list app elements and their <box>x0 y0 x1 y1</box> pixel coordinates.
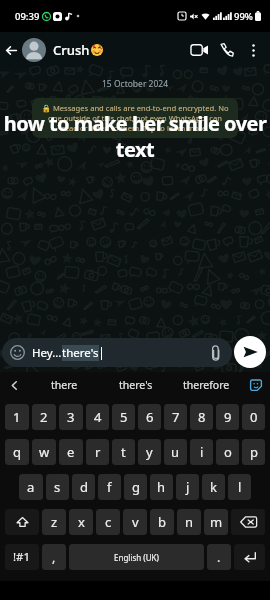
button[interactable]: Video call <box>185 36 213 64</box>
staticText: v <box>132 513 139 531</box>
staticText: m <box>210 513 223 531</box>
button[interactable]: t <box>112 439 135 465</box>
button[interactable]: Key <box>231 509 265 535</box>
staticText: r <box>95 443 101 461</box>
staticText: j <box>186 478 190 496</box>
staticText: t <box>121 443 126 461</box>
staticText: Crush <box>53 41 90 59</box>
button[interactable]: a <box>19 474 43 500</box>
staticText: p <box>250 443 258 461</box>
button[interactable]: r <box>86 439 109 465</box>
staticText: !#1 <box>13 549 31 565</box>
button[interactable]: p <box>242 439 265 465</box>
staticText: 8 <box>198 408 206 426</box>
button[interactable]: English (UK) <box>69 544 204 570</box>
button[interactable]: Stickers <box>242 372 270 398</box>
staticText: h <box>157 478 166 496</box>
button[interactable]: y <box>138 439 161 465</box>
button[interactable]: Attach <box>208 345 224 361</box>
button[interactable]: u <box>164 439 187 465</box>
staticText: 15 October 2024 <box>102 78 169 90</box>
button[interactable]: v <box>123 509 147 535</box>
staticText: g <box>132 478 140 496</box>
button[interactable]: w <box>32 439 56 465</box>
button[interactable]: 7 <box>164 404 187 430</box>
button[interactable]: Hey... <box>2 338 232 367</box>
staticText: 2 <box>40 408 48 426</box>
button[interactable]: f <box>98 474 121 500</box>
staticText: 99% <box>234 10 253 23</box>
button[interactable]: 0 <box>242 404 265 430</box>
button[interactable]: Send <box>234 336 266 368</box>
staticText: y <box>146 443 153 461</box>
staticText: 1 <box>13 408 21 426</box>
staticText: there <box>51 378 78 392</box>
button[interactable]: n <box>177 509 201 535</box>
staticText: 09:39 <box>15 10 40 23</box>
button[interactable]: z <box>42 509 66 535</box>
button[interactable]: 3 <box>59 404 83 430</box>
button[interactable]: !#1 <box>5 544 39 570</box>
staticText: 4 <box>94 408 102 426</box>
button[interactable]: . <box>207 544 231 570</box>
button[interactable]: Call <box>213 36 241 64</box>
staticText: z <box>51 513 58 531</box>
button[interactable]: Key <box>5 509 39 535</box>
button[interactable]: , <box>42 544 66 570</box>
button[interactable]: Previous suggestions <box>0 372 28 398</box>
button[interactable]: 2 <box>32 404 56 430</box>
button[interactable]: 8 <box>190 404 213 430</box>
button[interactable]: there's <box>100 372 171 398</box>
button[interactable]: c <box>96 509 120 535</box>
button[interactable]: 5 <box>112 404 135 430</box>
staticText: 9 <box>224 408 232 426</box>
staticText: there's <box>119 378 153 392</box>
staticText: k <box>210 478 217 496</box>
button[interactable]: b <box>150 509 174 535</box>
staticText: i <box>200 443 204 461</box>
staticText: b <box>158 513 166 531</box>
staticText: o <box>224 443 232 461</box>
button[interactable]: i <box>190 439 213 465</box>
staticText: 7 <box>172 408 180 426</box>
staticText: 6 <box>146 408 154 426</box>
staticText: w <box>39 443 50 461</box>
button[interactable]: 6 <box>138 404 161 430</box>
button[interactable]: x <box>69 509 93 535</box>
staticText: q <box>13 443 21 461</box>
button[interactable]: Crush <box>53 41 185 59</box>
button[interactable]: there <box>28 372 100 398</box>
button[interactable]: g <box>124 474 147 500</box>
button[interactable]: h <box>150 474 173 500</box>
button[interactable]: q <box>5 439 29 465</box>
staticText: 🔒 Messages and calls are end-to-end encr… <box>40 103 230 133</box>
staticText: 0 <box>250 408 258 426</box>
button[interactable]: m <box>204 509 228 535</box>
staticText: c <box>105 513 112 531</box>
button[interactable]: Key <box>234 544 265 570</box>
button[interactable]: More options <box>241 38 265 62</box>
staticText: , <box>52 549 56 566</box>
staticText: there's <box>62 345 99 361</box>
staticText: English (UK) <box>114 552 159 563</box>
staticText: therefore <box>183 378 230 392</box>
button[interactable]: 4 <box>86 404 109 430</box>
button[interactable]: d <box>72 474 95 500</box>
button[interactable]: 9 <box>216 404 239 430</box>
staticText: d <box>80 478 88 496</box>
button[interactable]: therefore <box>171 372 242 398</box>
button[interactable]: o <box>216 439 239 465</box>
button[interactable]: j <box>176 474 199 500</box>
button[interactable]: l <box>228 474 251 500</box>
staticText: 3 <box>67 408 75 426</box>
button[interactable]: s <box>46 474 69 500</box>
button[interactable]: e <box>59 439 83 465</box>
staticText: l <box>238 478 242 496</box>
button[interactable]: 1 <box>5 404 29 430</box>
button[interactable]: k <box>202 474 225 500</box>
staticText: s <box>54 478 61 496</box>
staticText: e <box>67 443 75 461</box>
staticText: . <box>217 549 221 566</box>
staticText: n <box>185 513 194 531</box>
button[interactable]: Back <box>0 39 22 61</box>
